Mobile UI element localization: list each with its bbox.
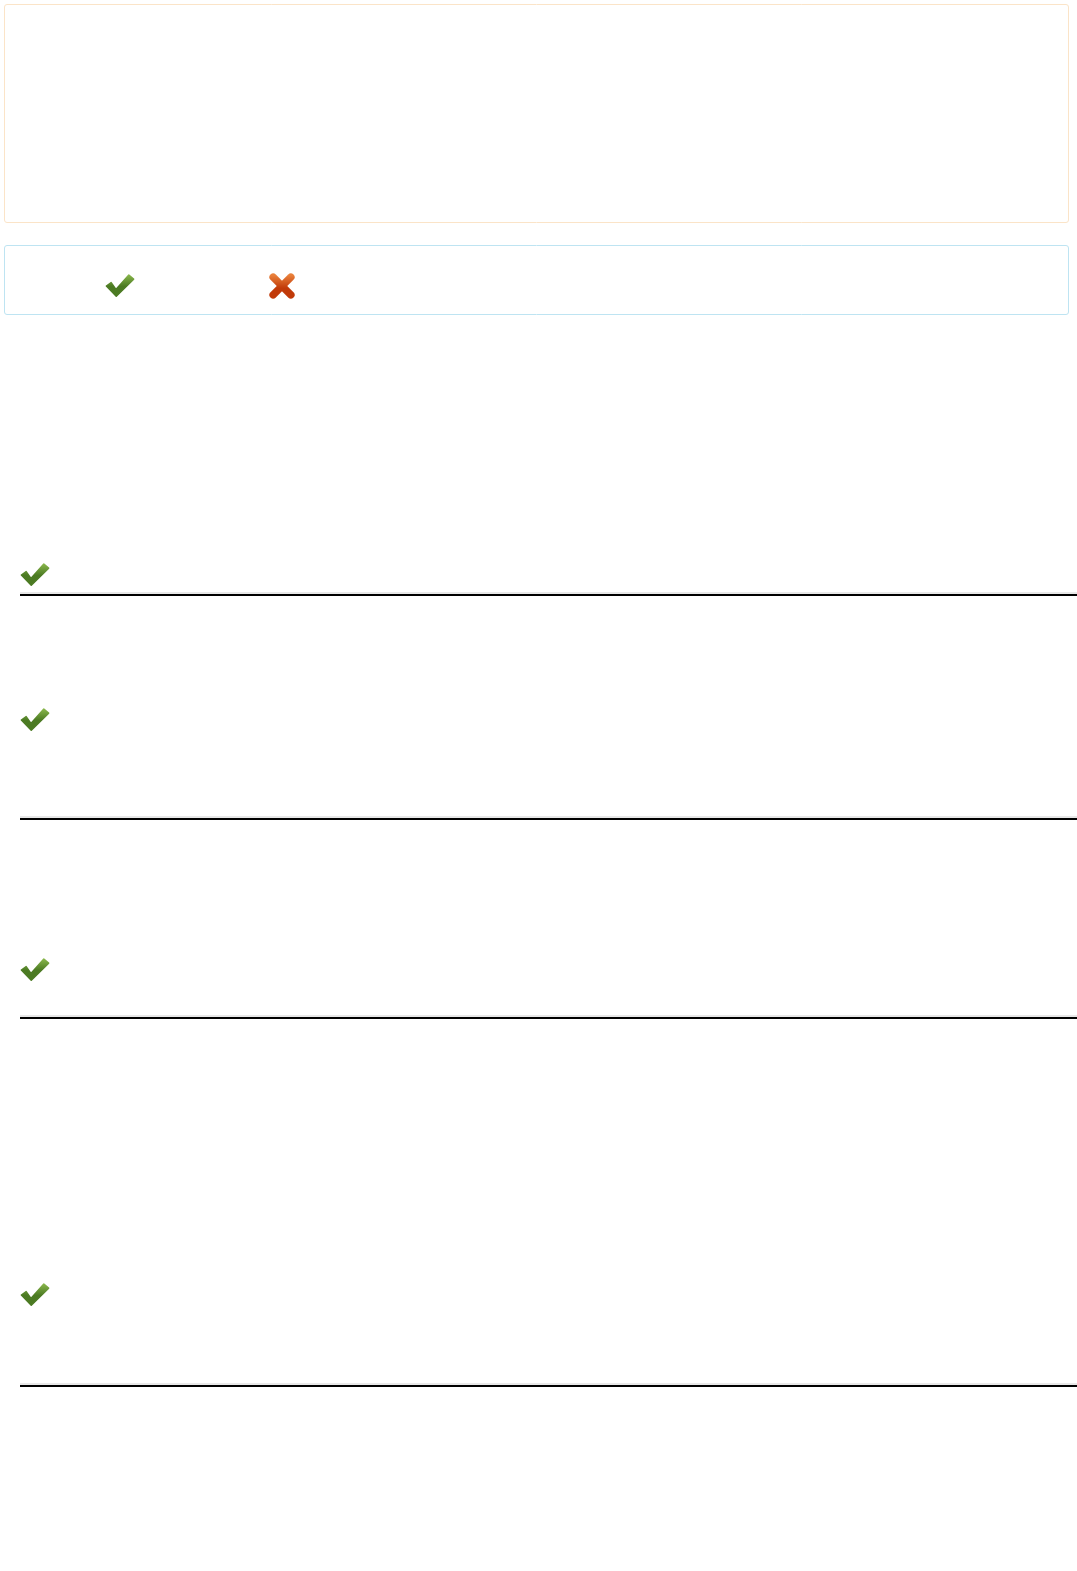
button[interactable]: Reject (265, 269, 299, 303)
button[interactable]: Completed (18, 558, 52, 592)
button[interactable]: Completed (18, 1278, 52, 1312)
button[interactable]: Completed (18, 953, 52, 987)
button[interactable] (4, 4, 1069, 223)
button[interactable]: Accept (103, 269, 137, 303)
button[interactable]: Completed (18, 703, 52, 737)
